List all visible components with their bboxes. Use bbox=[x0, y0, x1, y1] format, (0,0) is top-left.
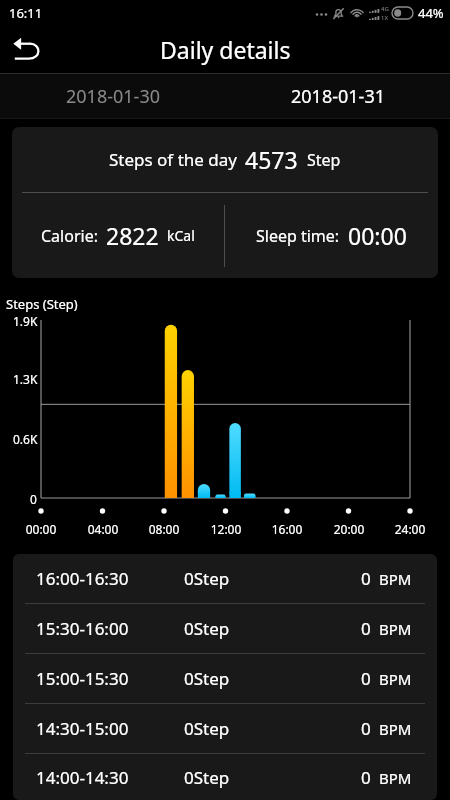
button[interactable]: Steps of the day bbox=[12, 127, 438, 278]
staticText: 44% bbox=[418, 4, 444, 22]
staticText: BPM bbox=[379, 719, 412, 739]
staticText: 4573 bbox=[245, 144, 298, 175]
staticText: 0 bbox=[361, 717, 371, 740]
staticText: Step bbox=[307, 149, 341, 171]
staticText: BPM bbox=[379, 669, 412, 689]
button[interactable]: 14:30-15:00 bbox=[13, 704, 437, 753]
staticText: 00:00 bbox=[18, 521, 64, 537]
staticText: 2018-01-31 bbox=[291, 84, 385, 109]
staticText: 0Step bbox=[184, 567, 230, 590]
staticText: 16:00 bbox=[264, 521, 310, 537]
staticText: 1X bbox=[381, 14, 388, 22]
staticText: 0Step bbox=[184, 717, 230, 740]
staticText: 0.6K bbox=[13, 431, 38, 447]
staticText: 24:00 bbox=[387, 521, 433, 537]
staticText: 15:30-16:00 bbox=[36, 617, 129, 640]
staticText: 0Step bbox=[184, 766, 230, 789]
button[interactable]: 14:00-14:30 bbox=[13, 754, 437, 800]
staticText: 14:00-14:30 bbox=[36, 766, 129, 789]
staticText: 1.9K bbox=[13, 313, 38, 329]
staticText: 2822 bbox=[106, 220, 159, 251]
staticText: Daily details bbox=[160, 34, 291, 65]
staticText: 0 bbox=[361, 766, 371, 789]
staticText: 20:00 bbox=[326, 521, 372, 537]
staticText: 08:00 bbox=[141, 521, 187, 537]
staticText: 12:00 bbox=[203, 521, 249, 537]
staticText: 16:11 bbox=[9, 4, 43, 22]
staticText: 04:00 bbox=[80, 521, 126, 537]
button[interactable]: 16:00-16:30 bbox=[13, 554, 437, 603]
staticText: 15:00-15:30 bbox=[36, 667, 129, 690]
staticText: Calorie: bbox=[41, 225, 98, 247]
staticText: 00:00 bbox=[348, 220, 407, 251]
staticText: 0Step bbox=[184, 617, 230, 640]
staticText: kCal bbox=[167, 226, 195, 245]
staticText: 0 bbox=[30, 491, 37, 507]
staticText: 4G bbox=[381, 5, 389, 13]
button[interactable]: 15:30-16:00 bbox=[13, 604, 437, 653]
staticText: 14:30-15:00 bbox=[36, 717, 129, 740]
staticText: 0 bbox=[361, 567, 371, 590]
staticText: 1.3K bbox=[13, 371, 38, 387]
staticText: 16:00-16:30 bbox=[36, 567, 129, 590]
staticText: 2018-01-30 bbox=[66, 84, 160, 109]
button[interactable]: Back bbox=[6, 27, 50, 71]
staticText: Steps (Step) bbox=[6, 295, 78, 313]
staticText: BPM bbox=[379, 768, 412, 788]
staticText: Steps of the day bbox=[109, 148, 237, 171]
staticText: BPM bbox=[379, 619, 412, 639]
button[interactable]: 15:00-15:30 bbox=[13, 654, 437, 703]
staticText: Sleep time: bbox=[256, 225, 340, 247]
button[interactable]: 2018-01-30 bbox=[0, 74, 225, 118]
staticText: 0 bbox=[361, 617, 371, 640]
staticText: 0 bbox=[361, 667, 371, 690]
button[interactable]: 2018-01-31 bbox=[225, 74, 450, 118]
staticText: BPM bbox=[379, 569, 412, 589]
staticText: 0Step bbox=[184, 667, 230, 690]
